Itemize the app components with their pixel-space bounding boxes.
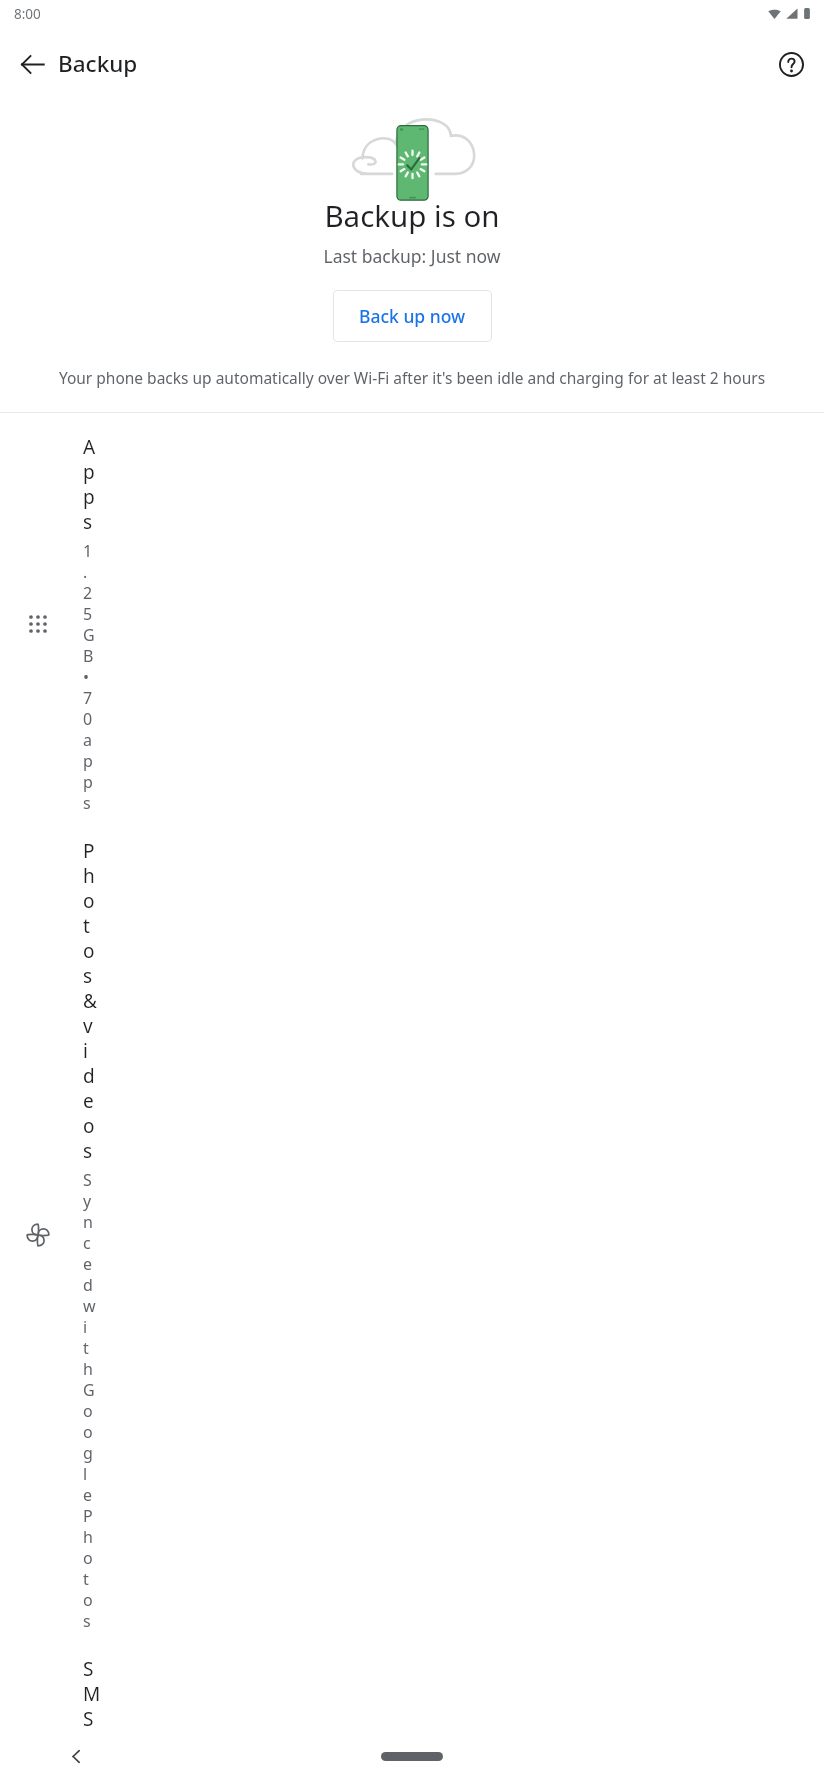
button[interactable]: Apps	[0, 422, 824, 826]
button[interactable]: Help	[767, 40, 815, 88]
button[interactable]: Back up now	[333, 290, 492, 342]
staticText: 8:00	[14, 5, 41, 23]
button[interactable]: Photos & videos	[0, 826, 824, 1644]
staticText: Backup is on	[324, 195, 500, 235]
button[interactable]: Home	[381, 1752, 443, 1761]
staticText: Back up now	[359, 304, 466, 328]
button[interactable]: Back	[56, 1736, 96, 1776]
button[interactable]: Back	[8, 40, 56, 88]
staticText: Your phone backs up automatically over W…	[20, 367, 804, 388]
staticText: Backup	[58, 48, 138, 79]
staticText: Last backup: Just now	[323, 244, 501, 268]
button[interactable]: SMS & MMS messages	[0, 1644, 824, 1726]
